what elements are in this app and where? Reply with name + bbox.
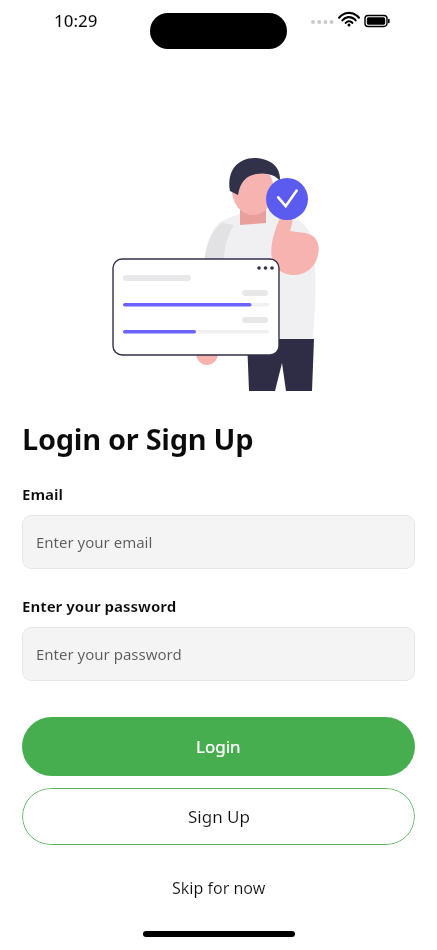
staticText: Email xyxy=(22,484,63,504)
staticText: Login or Sign Up xyxy=(22,419,254,458)
button[interactable]: Skip for now xyxy=(172,877,266,899)
staticText: 10:29 xyxy=(54,9,98,32)
button[interactable]: Login xyxy=(22,717,415,776)
button[interactable]: Enter your email xyxy=(22,515,415,569)
staticText: Enter your password xyxy=(36,644,182,664)
staticText: Enter your password xyxy=(22,596,177,616)
staticText: Login xyxy=(196,735,241,758)
button[interactable]: Enter your password xyxy=(22,627,415,681)
staticText: Sign Up xyxy=(188,805,250,828)
button[interactable]: Sign Up xyxy=(22,788,415,845)
staticText: Enter your email xyxy=(36,532,153,552)
